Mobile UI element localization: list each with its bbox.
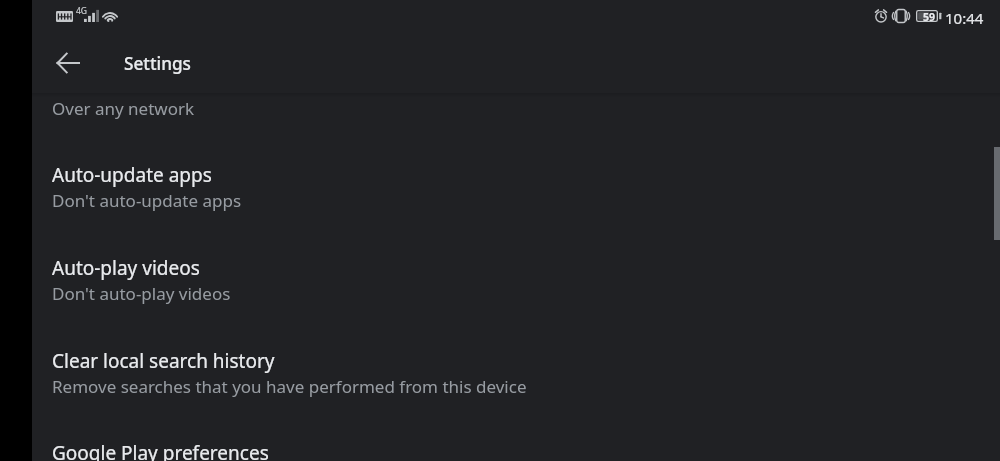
button[interactable]: Clear local search history bbox=[0, 326, 1000, 418]
button[interactable]: Update over Wi-Fi only bbox=[0, 96, 1000, 140]
staticText: Don't auto-update apps bbox=[52, 189, 242, 212]
staticText: Auto-play videos bbox=[52, 255, 200, 281]
staticText: Don't auto-play videos bbox=[52, 282, 231, 305]
staticText: 4G bbox=[76, 5, 88, 17]
staticText: Remove searches that you have performed … bbox=[52, 375, 527, 398]
staticText: 59 bbox=[923, 10, 936, 22]
staticText: Over any network bbox=[52, 97, 195, 120]
staticText: Google Play preferences bbox=[52, 440, 269, 461]
button[interactable]: Navigate up bbox=[45, 40, 91, 86]
button[interactable]: Auto-update apps bbox=[0, 140, 1000, 232]
staticText: 10:44 bbox=[945, 8, 984, 28]
button[interactable]: Auto-play videos bbox=[0, 233, 1000, 325]
staticText: Auto-update apps bbox=[52, 162, 212, 188]
staticText: Clear local search history bbox=[52, 348, 275, 374]
staticText: Settings bbox=[124, 52, 191, 75]
button[interactable]: Google Play preferences bbox=[0, 418, 1000, 461]
